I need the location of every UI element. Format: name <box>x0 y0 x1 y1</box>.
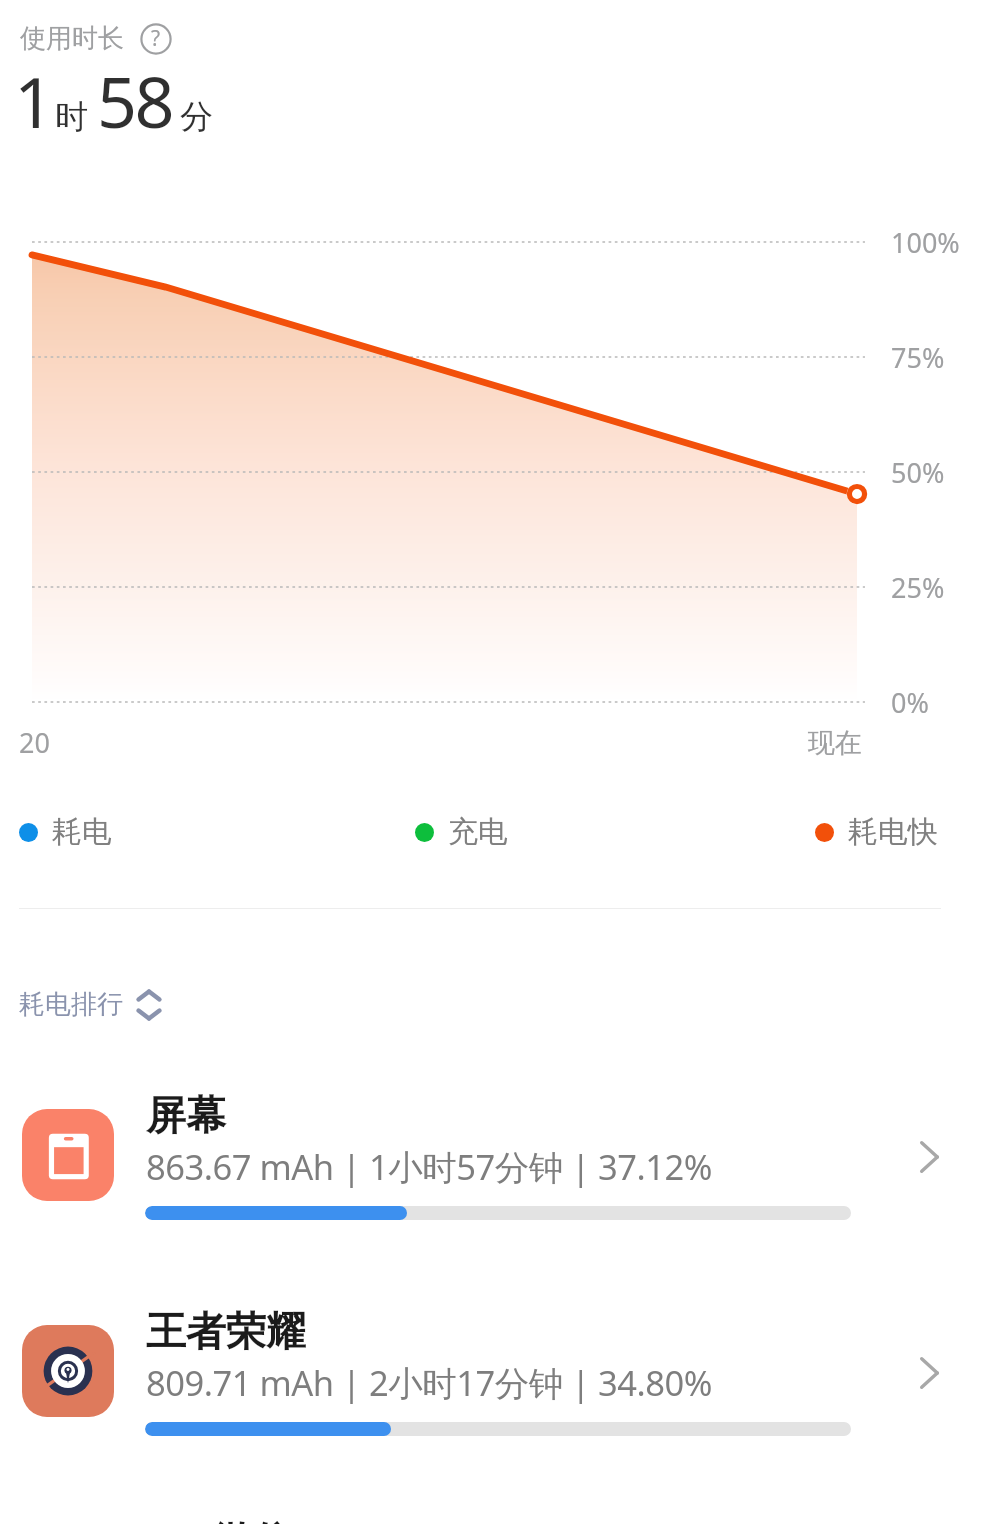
staticText: 25% <box>891 569 945 606</box>
staticText: 分 <box>180 96 213 138</box>
staticText: 使用时长 <box>20 22 124 55</box>
staticText: 50% <box>891 454 945 491</box>
staticText: 809.71 mAh | 2小时17分钟 | 34.80% <box>146 1359 712 1406</box>
staticText: 0% <box>891 684 929 721</box>
button[interactable]: 微信 <box>0 1500 989 1524</box>
other: 查看详情 <box>920 1357 939 1389</box>
staticText: 耗电 <box>52 813 112 851</box>
button[interactable]: 屏幕 <box>0 1090 989 1290</box>
staticText: 58 <box>97 53 173 148</box>
staticText: 863.67 mAh | 1小时57分钟 | 37.12% <box>146 1143 712 1190</box>
staticText: 屏幕 <box>146 1090 226 1140</box>
button[interactable]: 王者荣耀 <box>0 1306 989 1506</box>
staticText: ? <box>151 24 161 53</box>
staticText: 现在 <box>808 726 862 760</box>
other: 查看详情 <box>920 1141 939 1173</box>
staticText: 微信 <box>212 1516 292 1524</box>
staticText: 1 <box>14 53 55 148</box>
staticText: 王者荣耀 <box>146 1306 306 1356</box>
staticText: 75% <box>891 339 945 376</box>
staticText: 充电 <box>448 813 508 851</box>
staticText: 耗电快 <box>848 813 938 851</box>
staticText: 耗电排行 <box>19 988 123 1021</box>
button[interactable]: 使用时长说明 <box>140 23 172 55</box>
staticText: 100% <box>891 224 960 261</box>
button[interactable]: 耗电排行 <box>19 988 161 1021</box>
staticText: 时 <box>55 96 88 138</box>
staticText: 20 <box>19 724 50 761</box>
